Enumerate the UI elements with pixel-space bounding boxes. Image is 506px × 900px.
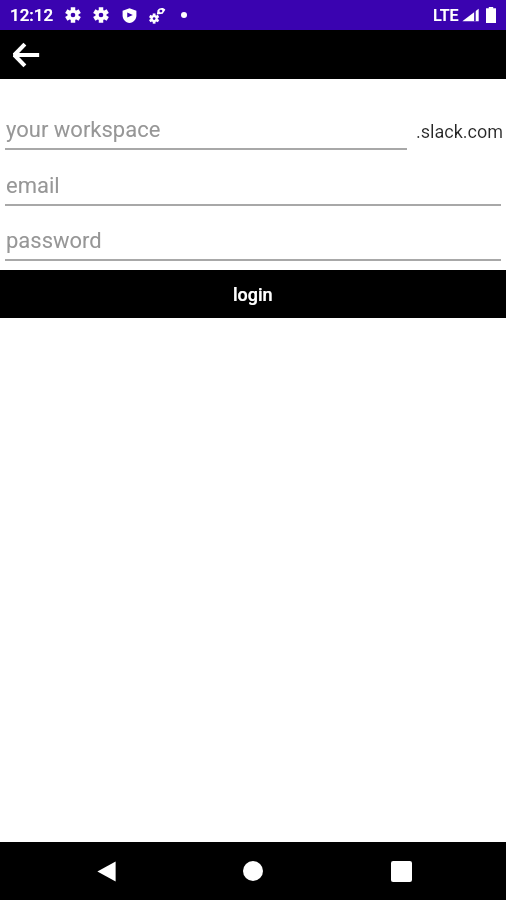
staticText: your workspace bbox=[6, 117, 161, 143]
button[interactable]: Home bbox=[211, 842, 295, 900]
staticText: login bbox=[233, 284, 273, 305]
button[interactable]: your workspace bbox=[0, 112, 407, 148]
staticText: email bbox=[6, 173, 60, 199]
button[interactable]: password bbox=[0, 223, 506, 259]
staticText: .slack.com bbox=[416, 121, 503, 142]
button[interactable]: Back bbox=[64, 842, 148, 900]
staticText: password bbox=[6, 228, 102, 254]
button[interactable]: email bbox=[0, 168, 506, 204]
staticText: 12:12 bbox=[10, 5, 54, 25]
button[interactable]: Back bbox=[2, 31, 50, 79]
button[interactable]: login bbox=[0, 270, 506, 318]
button[interactable]: Recents bbox=[359, 842, 443, 900]
staticText: LTE bbox=[433, 6, 459, 25]
